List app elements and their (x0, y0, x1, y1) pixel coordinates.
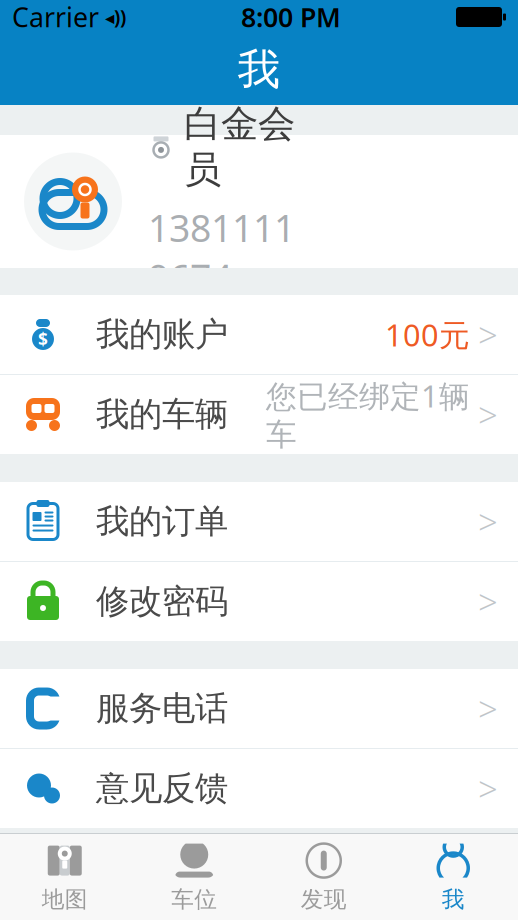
staticText: Carrier (12, 0, 99, 35)
staticText: > (478, 685, 498, 731)
staticText: 您已经绑定1辆车 (266, 375, 470, 454)
staticText: 车位 (171, 886, 217, 913)
staticText: 100元 (385, 314, 470, 355)
staticText: 服务电话 (96, 688, 228, 729)
staticText: > (478, 311, 498, 357)
staticText: 13811119674 (148, 203, 295, 302)
button[interactable]: $ (0, 295, 518, 375)
button[interactable]: 白金会员 (0, 135, 518, 268)
staticText: > (478, 498, 498, 544)
staticText: > (478, 391, 498, 437)
button[interactable]: 发现 (259, 835, 388, 919)
staticText: 8:00 PM (241, 0, 341, 35)
button[interactable]: 服务电话 (0, 669, 518, 749)
button[interactable]: 我的订单 (0, 482, 518, 562)
staticText: $ (38, 327, 48, 350)
staticText: > (478, 578, 498, 624)
staticText: 意见反馈 (96, 768, 228, 809)
staticText: ◂)) (105, 5, 126, 29)
button[interactable]: 我 (388, 835, 518, 919)
staticText: 我的车辆 (96, 394, 228, 435)
button[interactable]: 我的车辆 (0, 375, 518, 454)
button[interactable]: 地图 (0, 835, 129, 919)
staticText: 发现 (301, 886, 347, 913)
staticText: 修改密码 (96, 581, 228, 622)
staticText: 我的订单 (96, 501, 228, 542)
button[interactable]: 车位 (129, 835, 259, 919)
button[interactable]: 意见反馈 (0, 749, 518, 828)
staticText: 我 (442, 886, 465, 913)
staticText: 地图 (42, 886, 88, 913)
staticText: 我的账户 (96, 314, 228, 355)
button[interactable]: 修改密码 (0, 562, 518, 641)
staticText: 白金会员 (184, 101, 295, 193)
staticText: 我 (237, 43, 280, 96)
staticText: > (478, 765, 498, 811)
